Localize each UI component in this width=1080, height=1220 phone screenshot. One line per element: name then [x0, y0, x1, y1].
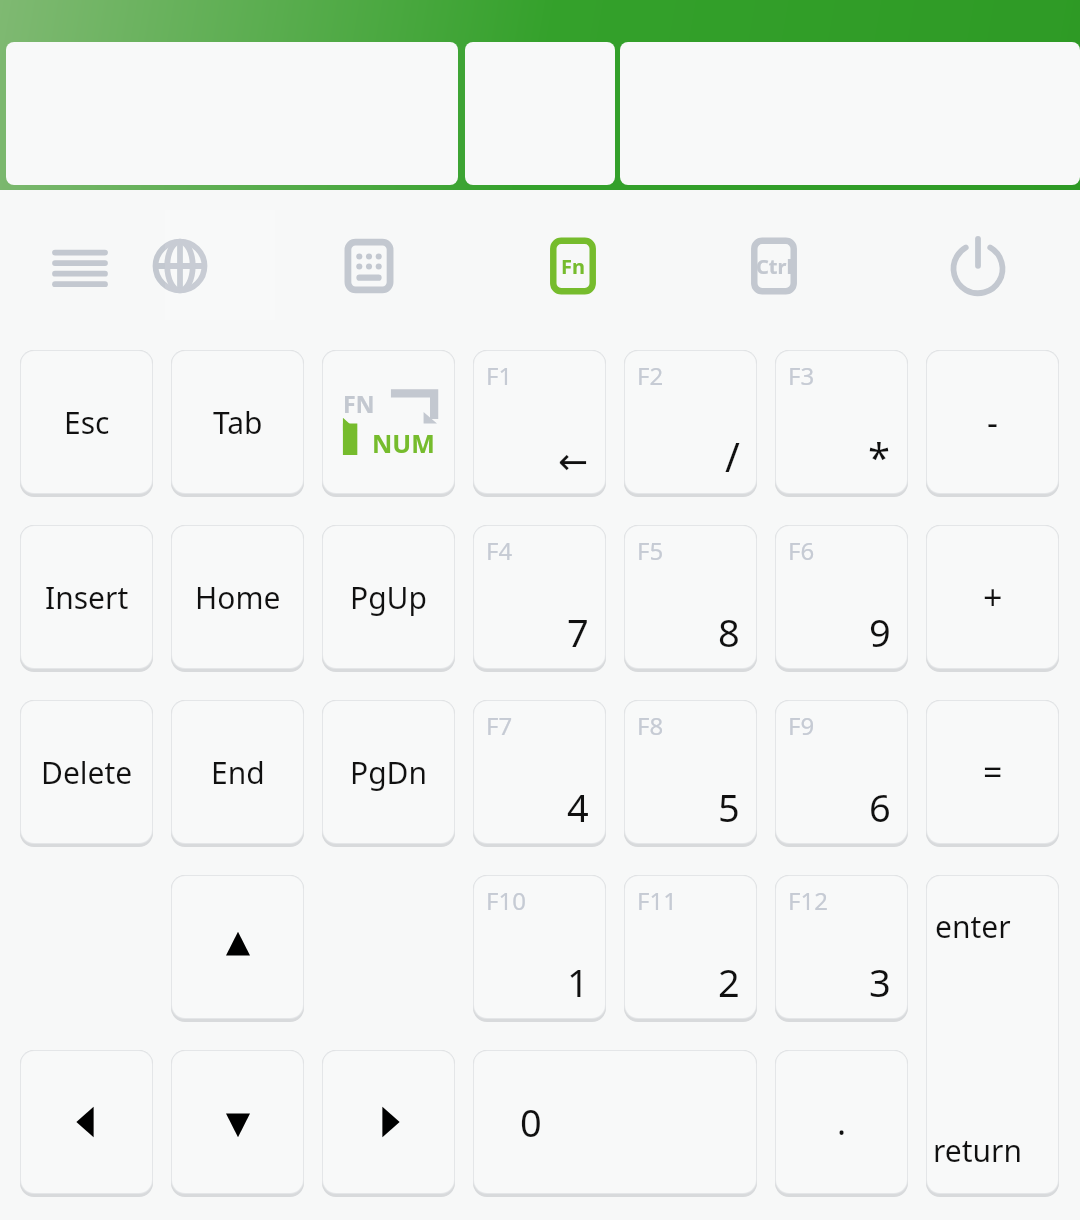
button[interactable]: Ctrl modifier: [740, 232, 808, 300]
button[interactable]: Arrow right: [322, 1050, 455, 1197]
staticText: F7: [486, 709, 513, 742]
staticText: 6: [869, 781, 891, 833]
button[interactable]: [6, 42, 458, 185]
staticText: =: [983, 749, 1003, 795]
staticText: F8: [637, 709, 664, 742]
staticText: F10: [486, 884, 526, 917]
staticText: -: [987, 399, 998, 445]
staticText: 3: [869, 956, 891, 1008]
staticText: .: [837, 1099, 847, 1145]
button[interactable]: [620, 42, 1080, 185]
staticText: enter: [935, 906, 1011, 947]
button[interactable]: FN: [322, 350, 455, 497]
button[interactable]: Home: [171, 525, 304, 672]
staticText: F3: [788, 359, 815, 392]
staticText: return: [933, 1130, 1023, 1171]
button[interactable]: PgUp: [322, 525, 455, 672]
staticText: NUM: [372, 426, 435, 460]
button[interactable]: F5: [624, 525, 757, 672]
button[interactable]: F12: [775, 875, 908, 1022]
staticText: 0: [520, 1096, 542, 1148]
button[interactable]: .: [775, 1050, 908, 1197]
button[interactable]: +: [926, 525, 1059, 672]
button[interactable]: Keyboard: [335, 232, 403, 300]
button[interactable]: Menu: [46, 232, 114, 300]
staticText: Ctrl: [756, 253, 793, 280]
staticText: 2: [718, 956, 740, 1008]
button[interactable]: F7: [473, 700, 606, 847]
staticText: F9: [788, 709, 815, 742]
button[interactable]: End: [171, 700, 304, 847]
staticText: Esc: [64, 402, 110, 443]
button[interactable]: Language: [146, 232, 214, 300]
staticText: ←: [558, 441, 589, 483]
staticText: Insert: [45, 577, 129, 618]
staticText: /: [725, 429, 740, 483]
button[interactable]: Arrow up: [171, 875, 304, 1022]
button[interactable]: [465, 42, 615, 185]
staticText: 8: [718, 606, 740, 658]
staticText: End: [211, 752, 265, 793]
button[interactable]: Delete: [20, 700, 153, 847]
button[interactable]: Esc: [20, 350, 153, 497]
button[interactable]: F8: [624, 700, 757, 847]
staticText: Delete: [41, 752, 133, 793]
button[interactable]: Arrow left: [20, 1050, 153, 1197]
staticText: F11: [637, 884, 677, 917]
button[interactable]: =: [926, 700, 1059, 847]
button[interactable]: Power: [944, 232, 1012, 300]
staticText: F5: [637, 534, 664, 567]
button[interactable]: F3: [775, 350, 908, 497]
button[interactable]: PgDn: [322, 700, 455, 847]
staticText: 1: [567, 956, 589, 1008]
button[interactable]: F11: [624, 875, 757, 1022]
button[interactable]: F9: [775, 700, 908, 847]
button[interactable]: Insert: [20, 525, 153, 672]
staticText: PgUp: [350, 577, 427, 618]
staticText: 9: [869, 606, 891, 658]
staticText: 5: [718, 781, 740, 833]
staticText: Fn: [561, 253, 585, 280]
button[interactable]: F6: [775, 525, 908, 672]
button[interactable]: F1: [473, 350, 606, 497]
staticText: Tab: [213, 402, 263, 443]
staticText: *: [868, 429, 891, 483]
staticText: +: [983, 574, 1003, 620]
staticText: 4: [567, 781, 589, 833]
staticText: F4: [486, 534, 513, 567]
button[interactable]: Fn modifier: [539, 232, 607, 300]
button[interactable]: Tab: [171, 350, 304, 497]
button[interactable]: -: [926, 350, 1059, 497]
staticText: Home: [195, 577, 281, 618]
staticText: PgDn: [350, 752, 428, 793]
staticText: 7: [567, 606, 589, 658]
staticText: FN: [343, 388, 375, 419]
button[interactable]: F10: [473, 875, 606, 1022]
button[interactable]: 0: [473, 1050, 757, 1197]
staticText: F1: [486, 359, 513, 392]
staticText: F2: [637, 359, 664, 392]
button[interactable]: enter: [926, 875, 1059, 1197]
button[interactable]: Arrow down: [171, 1050, 304, 1197]
staticText: F12: [788, 884, 828, 917]
staticText: F6: [788, 534, 815, 567]
button[interactable]: F4: [473, 525, 606, 672]
button[interactable]: F2: [624, 350, 757, 497]
